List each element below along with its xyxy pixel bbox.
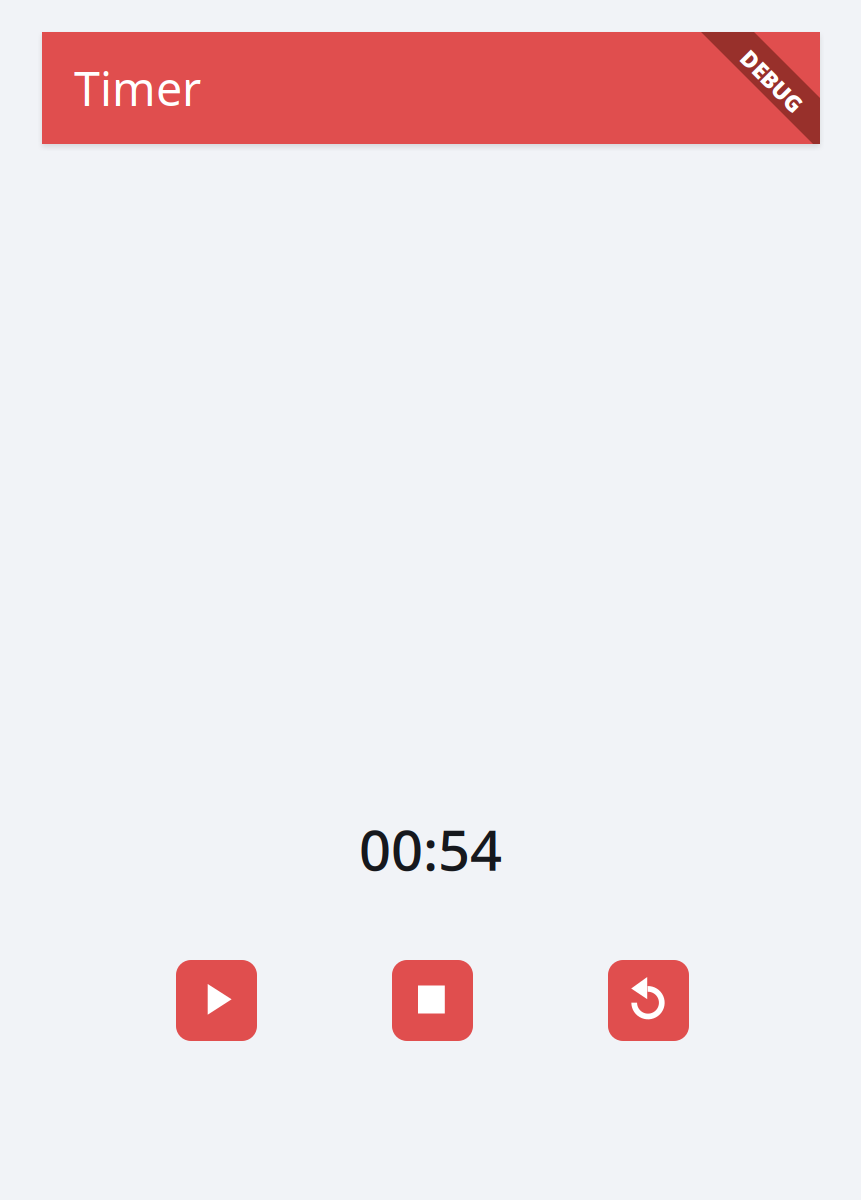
button[interactable]: Restart (608, 960, 689, 1041)
button[interactable]: Stop (392, 960, 473, 1041)
button[interactable]: Play (176, 960, 257, 1041)
staticText: DEBUG (733, 66, 811, 96)
staticText: 00:54 (359, 812, 502, 886)
staticText: Timer (74, 57, 201, 119)
